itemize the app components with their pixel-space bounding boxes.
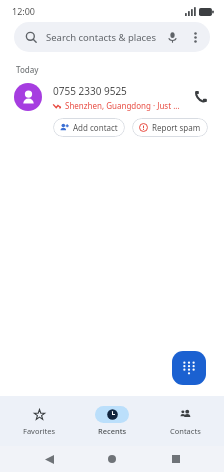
staticText: 0755 2330 9525 (53, 84, 127, 98)
button[interactable]: Back (34, 446, 64, 472)
staticText: Report spam (152, 122, 201, 133)
button[interactable]: More options (183, 25, 207, 49)
button[interactable]: Voice search (161, 26, 183, 48)
staticText: Today (16, 64, 39, 75)
staticText: Recents (98, 426, 127, 436)
button[interactable]: Report spam (132, 118, 208, 137)
button[interactable]: Search contacts & places (14, 22, 210, 52)
staticText: Favorites (23, 426, 56, 436)
button[interactable]: Recents (78, 403, 146, 439)
staticText: Shenzhen, Guangdong · Just ... (65, 100, 180, 111)
button[interactable]: Add contact (53, 118, 125, 137)
staticText: 12:00 (12, 5, 36, 17)
button[interactable]: Dialpad (172, 351, 206, 385)
button[interactable]: Contacts (151, 403, 219, 439)
button[interactable]: Favorites (5, 403, 73, 439)
staticText: Search contacts & places (46, 31, 161, 44)
staticText: Add contact (73, 122, 118, 133)
staticText: Contacts (170, 426, 201, 436)
button[interactable]: Recent apps (161, 446, 191, 472)
button[interactable]: Home (97, 446, 127, 472)
button[interactable]: 0755 2330 9525 (0, 77, 224, 113)
button[interactable]: Call back (188, 84, 214, 110)
